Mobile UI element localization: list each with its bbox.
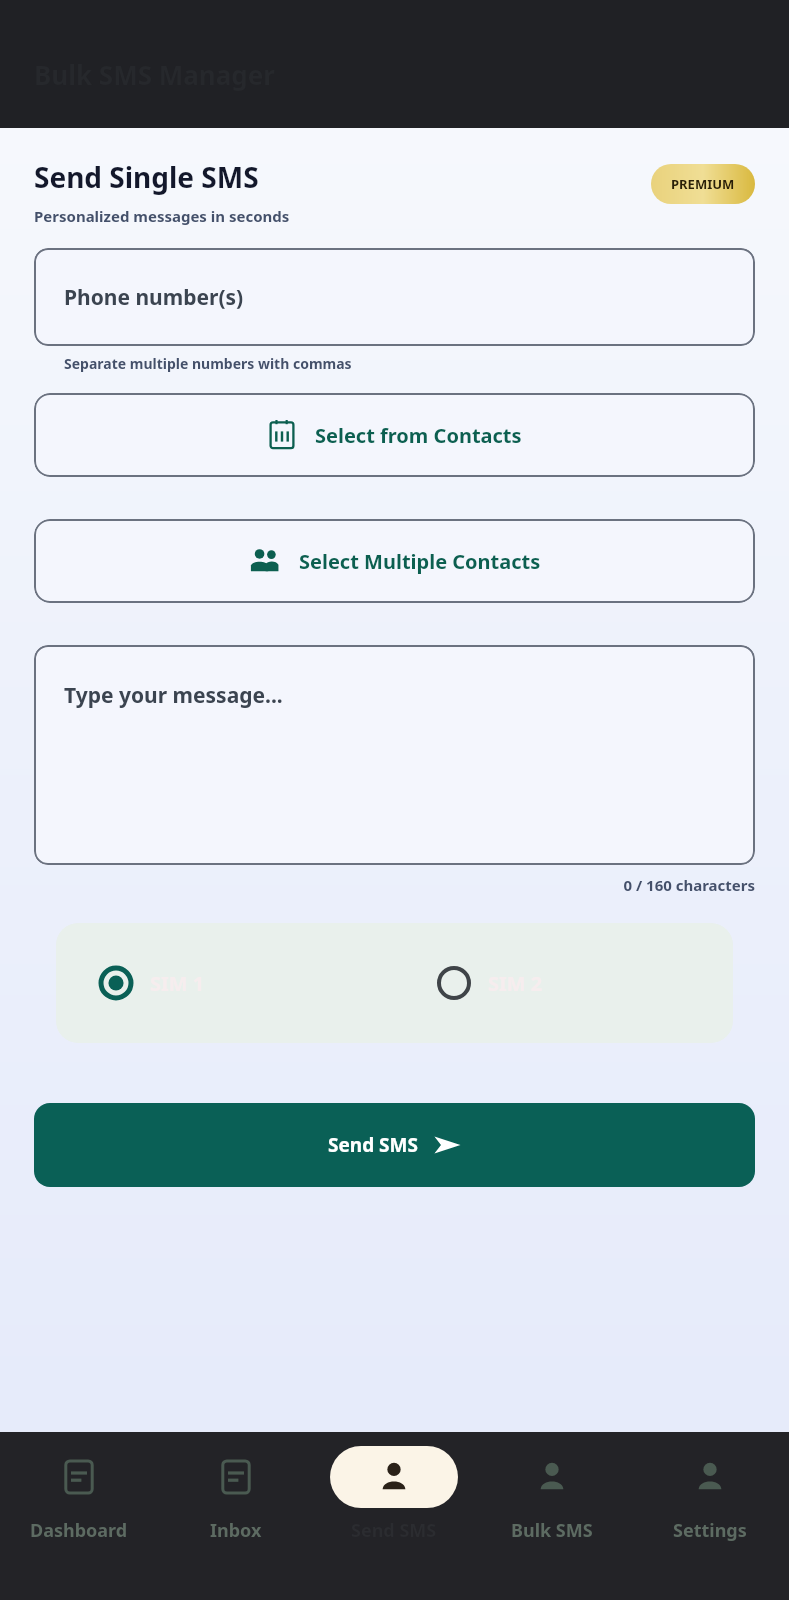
staticText: Send SMS [328,1132,418,1158]
button[interactable]: Select from Contacts [34,393,755,477]
staticText: Inbox [210,1518,262,1543]
button[interactable]: PREMIUM [651,164,755,204]
button[interactable]: Type your message... [34,645,755,865]
button[interactable]: Settings [631,1432,789,1543]
staticText: Dashboard [30,1518,128,1543]
button[interactable]: Dashboard [0,1432,157,1543]
button[interactable]: Send SMS [34,1103,755,1187]
staticText: Personalized messages in seconds [34,206,290,226]
staticText: Phone number(s) [64,283,244,312]
staticText: Type your message... [64,681,283,710]
staticText: PREMIUM [671,175,735,193]
staticText: Separate multiple numbers with commas [64,354,352,373]
button[interactable]: SIM 1 [56,965,394,1001]
button[interactable]: Bulk SMS [473,1432,631,1543]
button[interactable]: SIM 2 [394,965,733,1001]
button[interactable]: Select Multiple Contacts [34,519,755,603]
staticText: Send Single SMS [34,158,259,196]
button[interactable]: Inbox [157,1432,315,1543]
staticText: 0 / 160 characters [34,875,755,895]
staticText: Settings [673,1518,747,1543]
staticText: Send SMS [351,1518,437,1543]
staticText: Select from Contacts [315,422,522,449]
staticText: SIM 1 [150,970,205,997]
staticText: SIM 2 [488,970,543,997]
button[interactable]: Send SMS [315,1432,473,1543]
staticText: Select Multiple Contacts [299,548,541,575]
button[interactable]: Phone number(s) [34,248,755,346]
staticText: Bulk SMS [511,1518,593,1543]
